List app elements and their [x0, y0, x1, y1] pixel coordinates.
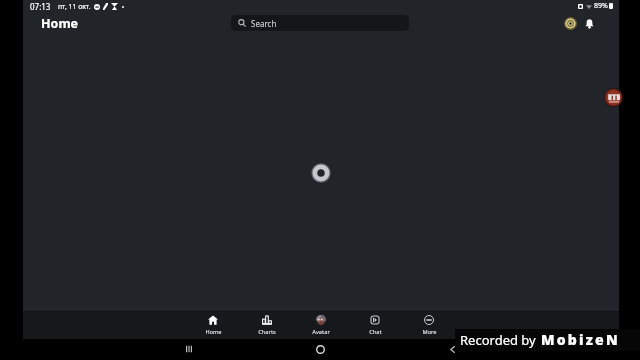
button[interactable]: Recents	[181, 341, 197, 357]
staticText: Avatar	[312, 328, 330, 336]
button[interactable]: Home	[312, 341, 328, 357]
staticText: MobizeN	[541, 330, 620, 349]
button[interactable]: Chat	[348, 309, 402, 339]
button[interactable]: Home	[186, 309, 240, 339]
button[interactable]: Back	[444, 341, 460, 357]
button[interactable]: More	[402, 309, 456, 339]
button[interactable]: Search	[231, 15, 409, 31]
staticText: 07:13	[30, 1, 51, 12]
staticText: Home	[41, 15, 79, 32]
button[interactable]: Coins	[561, 14, 579, 32]
staticText: Home	[205, 328, 222, 336]
staticText: Recorded by	[460, 331, 536, 349]
staticText: пт, 11 окт.	[58, 2, 91, 11]
staticText: Charts	[258, 328, 276, 336]
button[interactable]: Charts	[240, 309, 294, 339]
staticText: More	[422, 328, 437, 336]
staticText: 89%	[594, 1, 608, 11]
staticText: Chat	[369, 328, 382, 336]
button[interactable]: Avatar	[294, 309, 348, 339]
button[interactable]: Notifications	[580, 14, 598, 32]
staticText: Search	[251, 18, 277, 29]
